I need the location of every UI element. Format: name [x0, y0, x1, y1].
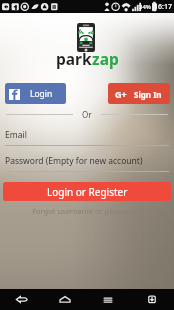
button[interactable]: Forgot username or password?	[0, 206, 174, 216]
button[interactable]: Login	[5, 83, 66, 104]
button[interactable]: Hide keyboard	[130, 289, 174, 310]
staticText: zap	[92, 48, 119, 69]
button[interactable]: Password (Empty for new account)	[5, 155, 169, 173]
staticText: park	[56, 48, 92, 69]
staticText: G+	[115, 88, 127, 100]
staticText: 16:17	[154, 2, 172, 12]
staticText: Login or Register	[47, 185, 128, 199]
staticText: Or	[82, 109, 92, 120]
staticText: 34%	[139, 3, 151, 11]
button[interactable]: Email	[5, 129, 169, 147]
staticText: Password (Empty for new account)	[5, 155, 143, 167]
button[interactable]: Back	[0, 289, 43, 310]
staticText: Email	[5, 129, 27, 141]
button[interactable]: Home	[43, 289, 86, 310]
button[interactable]: Recent apps	[86, 289, 130, 310]
staticText: Sign In	[134, 89, 162, 100]
staticText: Login	[30, 88, 53, 100]
button[interactable]: G+	[108, 83, 170, 104]
button[interactable]: Login or Register	[3, 182, 171, 201]
